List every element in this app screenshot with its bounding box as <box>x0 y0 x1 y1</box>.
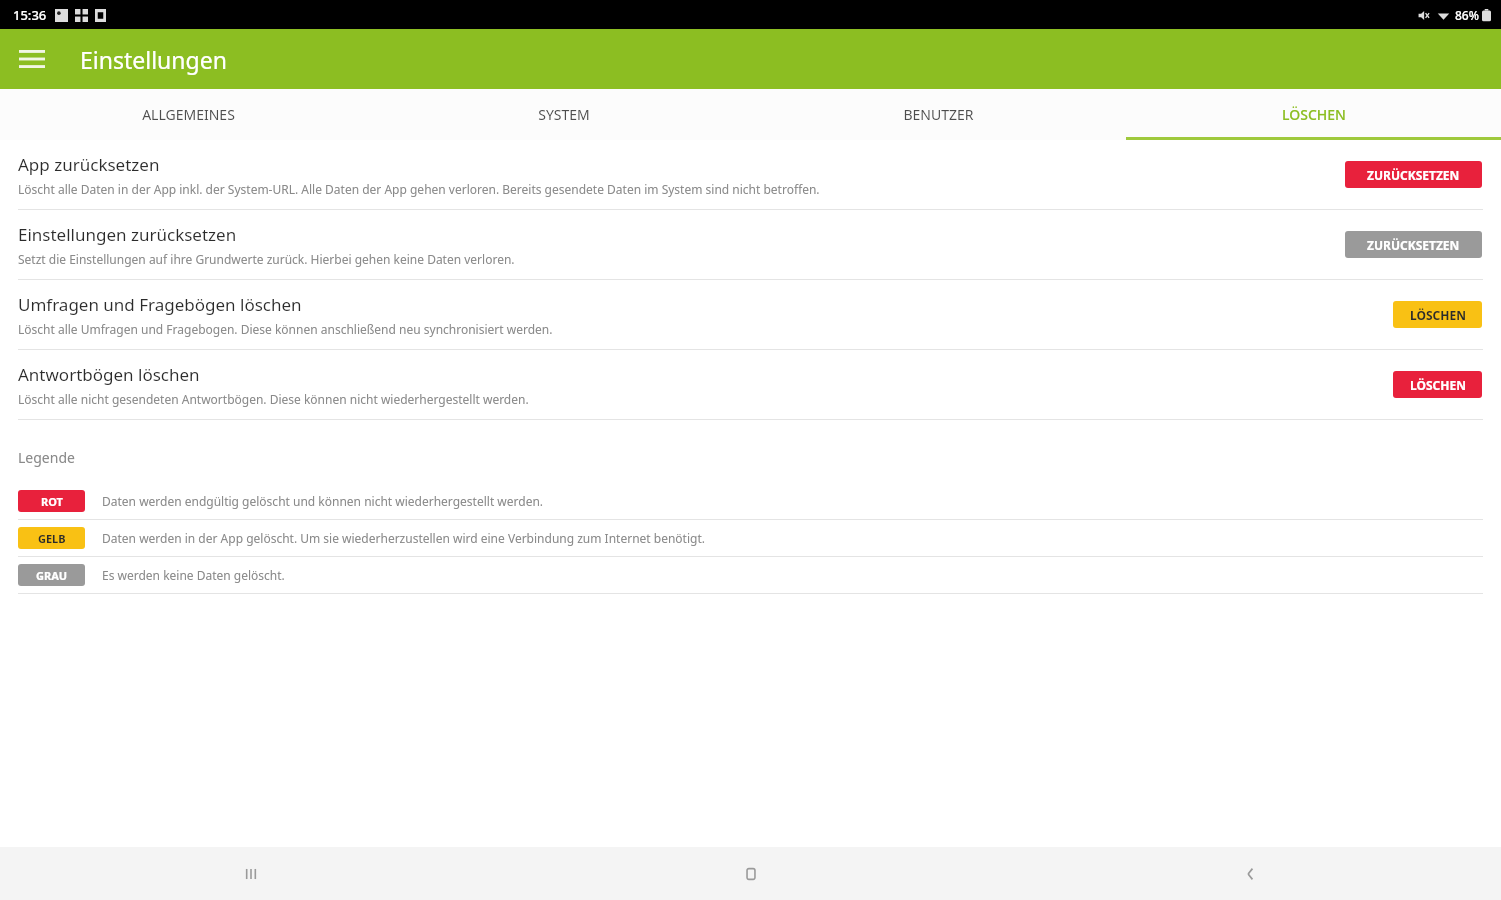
staticText: LÖSCHEN <box>1410 377 1466 393</box>
button[interactable]: Startbildschirm <box>501 847 1001 900</box>
button[interactable]: LÖSCHEN <box>1393 301 1482 328</box>
button[interactable]: Antwortbögen löschen <box>0 350 1501 419</box>
staticText: ZURÜCKSETZEN <box>1367 167 1460 183</box>
staticText: Löscht alle nicht gesendeten Antwortböge… <box>18 391 529 407</box>
staticText: LÖSCHEN <box>1410 307 1466 323</box>
staticText: GRAU <box>36 568 68 583</box>
button[interactable]: ALLGEMEINES <box>0 89 376 140</box>
button[interactable]: LÖSCHEN <box>1126 89 1501 140</box>
staticText: GELB <box>38 531 66 546</box>
button[interactable]: Umfragen und Fragebögen löschen <box>0 280 1501 349</box>
button[interactable]: SYSTEM <box>376 89 751 140</box>
staticText: Antwortbögen löschen <box>18 363 200 386</box>
button[interactable]: ZURÜCKSETZEN <box>1345 231 1482 258</box>
staticText: Löscht alle Umfragen und Fragebogen. Die… <box>18 321 553 337</box>
button[interactable]: Menü öffnen <box>10 37 54 81</box>
staticText: ALLGEMEINES <box>142 105 235 124</box>
staticText: LÖSCHEN <box>1282 105 1346 124</box>
staticText: Daten werden in der App gelöscht. Um sie… <box>102 530 705 546</box>
button[interactable]: Einstellungen zurücksetzen <box>0 210 1501 279</box>
staticText: Daten werden endgültig gelöscht und könn… <box>102 493 544 509</box>
staticText: App zurücksetzen <box>18 153 160 176</box>
staticText: Einstellungen zurücksetzen <box>18 223 237 246</box>
staticText: 15:36 <box>13 6 47 24</box>
staticText: 86% <box>1455 7 1479 23</box>
staticText: Löscht alle Daten in der App inkl. der S… <box>18 181 820 197</box>
button[interactable]: Letzte Apps <box>0 847 501 900</box>
staticText: Es werden keine Daten gelöscht. <box>102 567 285 583</box>
button[interactable]: App zurücksetzen <box>0 140 1501 209</box>
staticText: ZURÜCKSETZEN <box>1367 237 1460 253</box>
staticText: Setzt die Einstellungen auf ihre Grundwe… <box>18 251 515 267</box>
staticText: Einstellungen <box>80 44 227 75</box>
staticText: BENUTZER <box>903 105 974 124</box>
staticText: ROT <box>41 494 63 509</box>
button[interactable]: ZURÜCKSETZEN <box>1345 161 1482 188</box>
staticText: Legende <box>18 448 75 467</box>
staticText: SYSTEM <box>538 105 590 124</box>
staticText: Umfragen und Fragebögen löschen <box>18 293 302 316</box>
button[interactable]: BENUTZER <box>751 89 1126 140</box>
button[interactable]: LÖSCHEN <box>1393 371 1482 398</box>
